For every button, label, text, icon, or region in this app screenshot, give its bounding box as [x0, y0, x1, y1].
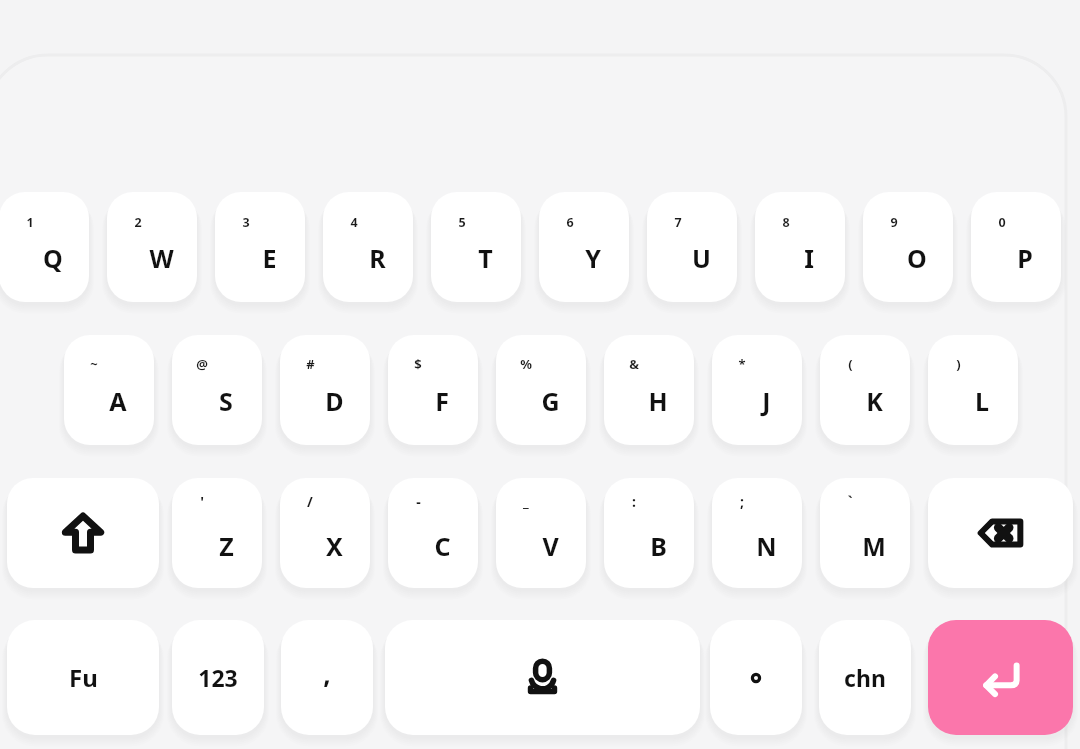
button[interactable]: & — [604, 335, 694, 445]
staticText: V — [542, 529, 559, 563]
staticText: , — [323, 656, 331, 691]
button[interactable]: _ — [496, 478, 586, 588]
staticText: % — [520, 355, 532, 373]
staticText: 8 — [782, 214, 790, 231]
button[interactable]: 6 — [539, 192, 629, 302]
staticText: S — [219, 384, 233, 418]
button[interactable] — [710, 620, 802, 735]
button[interactable]: Fu — [7, 620, 159, 735]
button[interactable]: Space / Voice input — [385, 620, 700, 735]
staticText: N — [756, 529, 777, 563]
button[interactable]: 0 — [971, 192, 1061, 302]
button[interactable]: ; — [712, 478, 802, 588]
button[interactable]: ~ — [64, 335, 154, 445]
staticText: K — [866, 384, 883, 418]
button[interactable]: @ — [172, 335, 262, 445]
staticText: * — [738, 355, 746, 373]
staticText: - — [416, 492, 421, 511]
button[interactable]: Backspace — [928, 478, 1073, 588]
staticText: ; — [740, 492, 744, 511]
staticText: 0 — [998, 214, 1006, 231]
button[interactable]: : — [604, 478, 694, 588]
staticText: 9 — [890, 214, 898, 231]
staticText: _ — [523, 492, 529, 511]
staticText: # — [306, 355, 315, 373]
button[interactable]: 2 — [107, 192, 197, 302]
staticText: : — [632, 492, 636, 511]
button[interactable]: # — [280, 335, 370, 445]
button[interactable]: ( — [820, 335, 910, 445]
staticText: X — [326, 529, 343, 563]
staticText: M — [862, 529, 886, 563]
staticText: ' — [200, 492, 204, 511]
button[interactable]: Shift — [7, 478, 159, 588]
button[interactable]: / — [280, 478, 370, 588]
staticText: P — [1017, 241, 1033, 275]
button[interactable]: 7 — [647, 192, 737, 302]
staticText: $ — [414, 355, 422, 373]
staticText: Y — [585, 241, 601, 275]
button[interactable]: - — [388, 478, 478, 588]
button[interactable]: $ — [388, 335, 478, 445]
button[interactable]: * — [712, 335, 802, 445]
staticText: U — [692, 241, 711, 275]
staticText: Z — [219, 529, 234, 563]
staticText: 2 — [134, 214, 142, 231]
staticText: 7 — [674, 214, 682, 231]
staticText: B — [650, 529, 667, 563]
staticText: 4 — [350, 214, 358, 231]
staticText: ) — [956, 355, 961, 373]
button[interactable]: ' — [172, 478, 262, 588]
staticText: ( — [848, 355, 853, 373]
staticText: R — [369, 241, 386, 275]
staticText: F — [435, 384, 449, 418]
staticText: @ — [196, 355, 208, 373]
staticText: 6 — [566, 214, 574, 231]
staticText: ` — [847, 492, 853, 511]
staticText: Fu — [69, 661, 98, 694]
staticText: W — [149, 241, 174, 275]
staticText: 3 — [242, 214, 250, 231]
staticText: H — [648, 384, 668, 418]
staticText: Q — [43, 241, 63, 275]
staticText: 1 — [26, 214, 34, 231]
staticText: ~ — [90, 355, 98, 373]
button[interactable]: % — [496, 335, 586, 445]
staticText: E — [262, 241, 277, 275]
button[interactable]: , — [281, 620, 373, 735]
staticText: & — [629, 355, 639, 373]
staticText: J — [762, 384, 771, 418]
button[interactable]: 5 — [431, 192, 521, 302]
button[interactable]: 8 — [755, 192, 845, 302]
staticText: C — [434, 529, 451, 563]
button[interactable]: 3 — [215, 192, 305, 302]
staticText: 123 — [198, 662, 238, 693]
staticText: T — [478, 241, 493, 275]
staticText: G — [541, 384, 560, 418]
button[interactable]: 9 — [863, 192, 953, 302]
staticText: D — [325, 384, 344, 418]
button[interactable]: ) — [928, 335, 1018, 445]
staticText: 5 — [458, 214, 466, 231]
staticText: L — [975, 384, 989, 418]
staticText: chn — [844, 662, 886, 693]
staticText: / — [307, 492, 313, 511]
button[interactable]: 1 — [0, 192, 89, 302]
button[interactable]: ` — [820, 478, 910, 588]
button[interactable]: Enter — [928, 620, 1073, 735]
button[interactable]: chn — [819, 620, 911, 735]
staticText: O — [907, 241, 927, 275]
staticText: A — [109, 384, 127, 418]
button[interactable]: 4 — [323, 192, 413, 302]
button[interactable]: 123 — [172, 620, 264, 735]
staticText: I — [804, 241, 814, 275]
